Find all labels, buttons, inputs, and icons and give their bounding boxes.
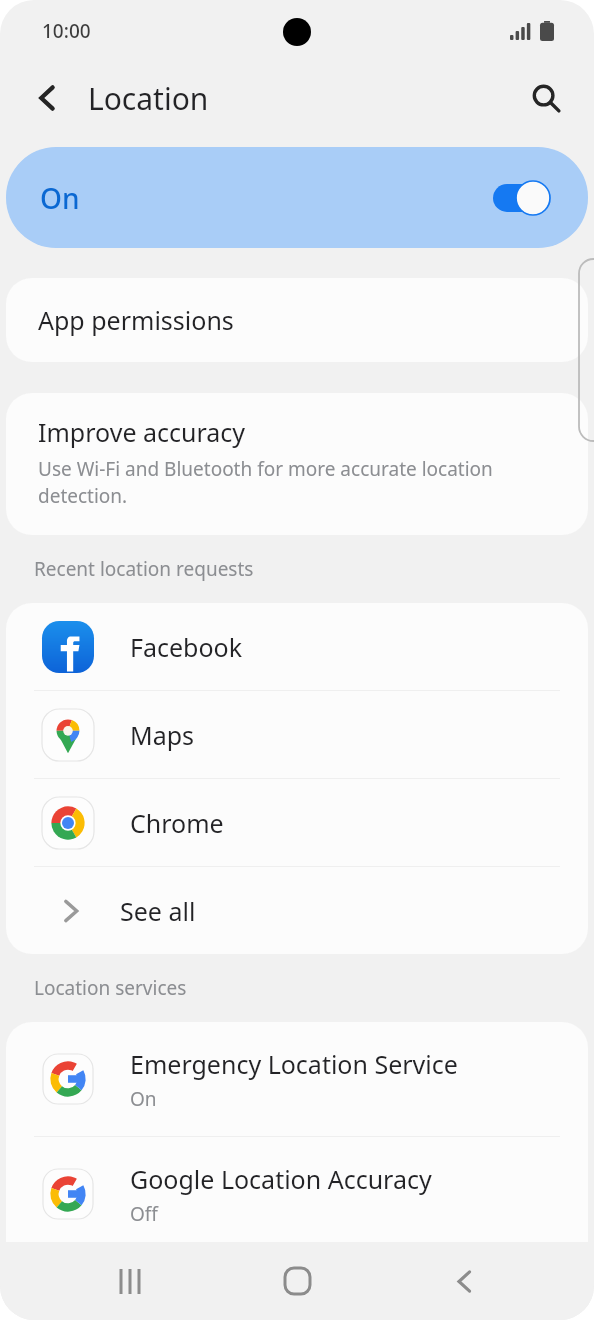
staticText: Google Location Accuracy — [130, 1162, 432, 1196]
staticText: On — [130, 1086, 157, 1112]
button[interactable]: App permissions — [6, 278, 588, 362]
button[interactable]: See all — [6, 867, 588, 954]
button[interactable]: Recents — [93, 1244, 167, 1318]
button[interactable]: Emergency Location Service — [6, 1022, 588, 1136]
staticText: Recent location requests — [34, 556, 254, 582]
staticText: Facebook — [130, 630, 243, 664]
button[interactable]: Improve accuracy — [6, 393, 588, 535]
button[interactable]: Google Location Accuracy — [6, 1137, 588, 1251]
button[interactable]: Home — [260, 1244, 334, 1318]
button[interactable]: Facebook — [6, 603, 588, 690]
staticText: See all — [120, 894, 196, 928]
button[interactable]: Chrome — [6, 779, 588, 866]
staticText: Chrome — [130, 806, 224, 840]
button[interactable]: On — [6, 147, 588, 248]
button[interactable]: Maps — [6, 691, 588, 778]
staticText: Emergency Location Service — [130, 1047, 458, 1081]
staticText: Maps — [130, 718, 195, 752]
staticText: 10:00 — [42, 18, 91, 44]
staticText: Improve accuracy — [38, 415, 246, 449]
staticText: Location — [88, 78, 209, 119]
staticText: Off — [130, 1201, 158, 1227]
button[interactable]: Back — [427, 1244, 501, 1318]
button[interactable]: Search — [520, 72, 572, 124]
staticText: Use Wi-Fi and Bluetooth for more accurat… — [38, 456, 552, 509]
staticText: Location services — [34, 975, 187, 1001]
staticText: On — [40, 179, 80, 217]
staticText: App permissions — [38, 303, 234, 337]
button[interactable]: Back — [24, 74, 72, 122]
